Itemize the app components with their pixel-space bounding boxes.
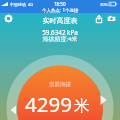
staticText: 18:50 xyxy=(54,1,66,7)
button[interactable]: Settings xyxy=(3,13,14,24)
staticText: 4G xyxy=(28,2,34,7)
staticText: 59.6342 kPa xyxy=(0,28,120,37)
button[interactable]: Share xyxy=(93,13,104,24)
staticText: 米 xyxy=(74,96,90,116)
staticText: 中国移动 xyxy=(10,2,26,7)
staticText: 4299 xyxy=(25,90,72,118)
staticText: 实时高度表 xyxy=(0,16,120,25)
staticText: 个人热点: 1个连接 xyxy=(42,7,79,13)
staticText: 当前海拔 xyxy=(0,81,120,88)
staticText: 海拔精度:4米 xyxy=(0,35,120,43)
staticText: 30% xyxy=(100,2,108,7)
button[interactable]: Camera xyxy=(106,13,117,24)
